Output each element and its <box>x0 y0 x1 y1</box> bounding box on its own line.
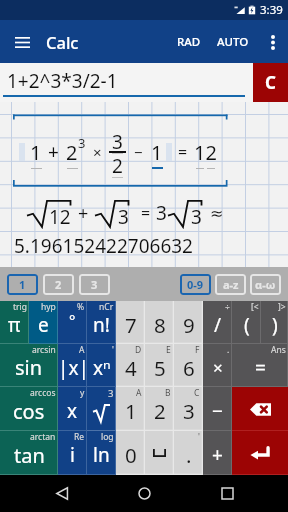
staticText: [< <box>251 301 259 313</box>
button[interactable]: AUTO <box>209 24 257 60</box>
staticText: 5.196152422706632 <box>14 233 193 259</box>
staticText: 12 <box>194 139 217 166</box>
staticText: + <box>212 442 223 468</box>
staticText: ( <box>244 312 250 338</box>
button[interactable]: arcsin <box>0 344 58 387</box>
button[interactable]: ' <box>174 431 203 475</box>
button[interactable]: − <box>203 387 232 431</box>
staticText: 3 <box>112 129 123 151</box>
button[interactable]: ]> <box>261 301 288 344</box>
button[interactable]: ÷ <box>203 301 232 344</box>
button[interactable]: % <box>58 301 87 344</box>
button[interactable]: arccos <box>0 387 58 431</box>
button[interactable]: RAD <box>169 24 209 60</box>
staticText: arccos <box>30 387 56 399</box>
staticText: tan <box>14 442 45 469</box>
staticText: 1 <box>19 277 26 292</box>
staticText: RAD <box>177 34 201 50</box>
button[interactable]: C <box>174 387 203 431</box>
staticText: − <box>212 398 223 424</box>
staticText: 5 <box>154 354 166 382</box>
button[interactable]: . <box>203 344 232 387</box>
staticText: 3 <box>108 387 114 400</box>
button[interactable]: 3 <box>79 274 110 295</box>
button[interactable]: More options <box>257 27 288 58</box>
button[interactable]: A <box>116 387 145 431</box>
button[interactable]: 1 <box>7 274 38 295</box>
button[interactable]: 9 <box>174 301 203 344</box>
staticText: + <box>48 139 59 165</box>
staticText: ° <box>69 310 76 330</box>
staticText: 2 <box>66 139 78 166</box>
staticText: A <box>136 387 142 399</box>
button[interactable]: ' <box>87 344 116 387</box>
button[interactable]: arctan <box>0 431 58 475</box>
button[interactable]: 2 <box>43 274 74 295</box>
staticText: ]> <box>278 301 286 313</box>
staticText: ) <box>272 312 278 338</box>
button[interactable]: nCr <box>87 301 116 344</box>
button[interactable]: Backspace <box>232 387 288 431</box>
staticText: % <box>77 301 85 313</box>
button[interactable]: log <box>87 431 116 475</box>
button[interactable]: D <box>116 344 145 387</box>
staticText: 12 <box>49 204 71 230</box>
button[interactable]: Back <box>41 475 83 512</box>
button[interactable]: Re <box>58 431 87 475</box>
staticText: . <box>186 441 192 469</box>
staticText: 3:39 <box>260 2 283 18</box>
staticText: log <box>101 431 114 443</box>
staticText: 0 <box>125 441 137 469</box>
button[interactable]: E <box>145 344 174 387</box>
staticText: 3 <box>78 134 86 152</box>
staticText: 1 <box>125 397 137 425</box>
button[interactable]: a-z <box>215 274 246 295</box>
button[interactable]: [< <box>232 301 261 344</box>
button[interactable]: 0-9 <box>180 274 211 295</box>
button[interactable]: Recent apps <box>206 475 248 512</box>
staticText: 3 <box>91 277 98 292</box>
staticText: F <box>195 344 200 356</box>
button[interactable]: C <box>253 63 288 102</box>
button[interactable]: 8 <box>145 301 174 344</box>
button[interactable]: 0 <box>116 431 145 475</box>
staticText: trig <box>13 301 27 313</box>
button[interactable]: 7 <box>116 301 145 344</box>
staticText: nCr <box>99 301 114 313</box>
staticText: E <box>166 344 171 356</box>
staticText: ≈ <box>210 204 224 223</box>
button[interactable]: A <box>58 344 87 387</box>
button[interactable]: Space <box>145 431 174 475</box>
button[interactable]: Open navigation drawer <box>7 27 37 57</box>
staticText: 3 <box>118 204 129 230</box>
staticText: Ans <box>271 344 286 356</box>
button[interactable]: F <box>174 344 203 387</box>
button[interactable]: y <box>58 387 87 431</box>
staticText: − <box>134 142 143 162</box>
button[interactable]: Enter <box>232 431 288 475</box>
button[interactable]: hyp <box>29 301 58 344</box>
staticText: 1 <box>30 139 42 166</box>
button[interactable]: Home <box>123 475 165 512</box>
staticText: a-z <box>223 277 239 292</box>
staticText: arcsin <box>32 344 56 356</box>
button[interactable]: trig <box>0 301 29 344</box>
staticText: Re <box>74 431 85 443</box>
button[interactable]: α-ω <box>250 274 281 295</box>
button[interactable]: B <box>145 387 174 431</box>
staticText: . <box>227 344 230 356</box>
staticText: × <box>93 142 102 162</box>
staticText: 9 <box>183 311 195 339</box>
staticText: 4 <box>125 354 137 382</box>
staticText: 2 <box>55 277 62 292</box>
button[interactable]: Square root <box>87 387 116 431</box>
button[interactable]: + <box>203 431 232 475</box>
button[interactable]: Ans <box>232 344 288 387</box>
staticText: 1+2^3*3/2-1 <box>7 68 118 94</box>
staticText: hyp <box>41 301 56 313</box>
staticText: + <box>78 201 89 226</box>
staticText: 7 <box>125 311 137 339</box>
staticText: 2 <box>154 397 166 425</box>
staticText: cos <box>13 398 45 425</box>
staticText: Calc <box>46 31 79 53</box>
